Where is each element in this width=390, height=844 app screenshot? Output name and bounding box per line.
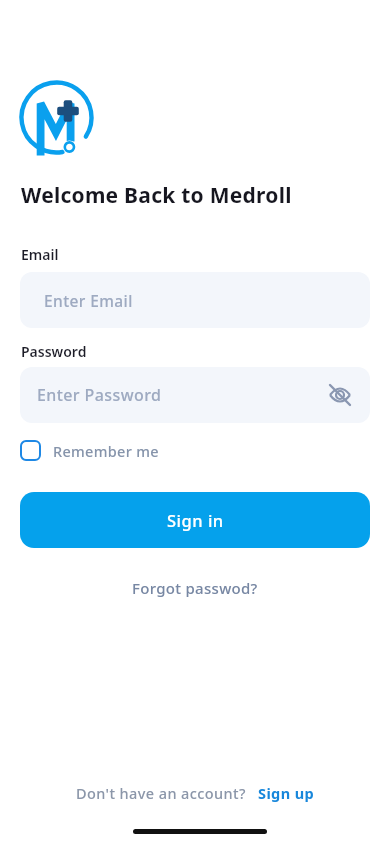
button[interactable] [327, 382, 353, 408]
button[interactable]: Sign in [20, 492, 370, 548]
button[interactable]: Forgot passwod? [132, 578, 258, 598]
staticText: Enter Email [44, 290, 133, 311]
staticText: Email [21, 245, 59, 264]
staticText: Don't have an account? [76, 783, 246, 803]
staticText: Sign in [167, 509, 224, 531]
button[interactable]: Sign up [258, 783, 315, 803]
button[interactable]: Remember me [20, 440, 159, 461]
button[interactable]: Enter Email [20, 272, 370, 328]
button[interactable]: Enter Password [20, 367, 370, 423]
staticText: Remember me [53, 441, 159, 461]
staticText: Password [21, 342, 87, 361]
staticText: Welcome Back to Medroll [21, 181, 292, 210]
staticText: Enter Password [37, 384, 162, 406]
